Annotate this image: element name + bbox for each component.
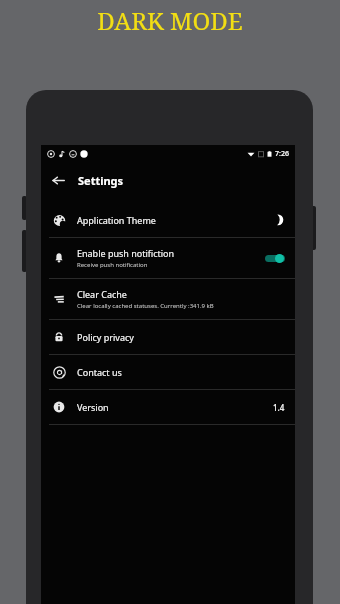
staticText: Clear locally cached statuses. Currently…: [77, 302, 214, 310]
staticText: 1.4: [273, 402, 285, 413]
button[interactable]: Contact us: [41, 355, 295, 389]
staticText: DARK MODE: [97, 4, 243, 37]
button[interactable]: Application Theme: [41, 203, 295, 237]
button[interactable]: Enable push notifiction: [41, 238, 295, 278]
staticText: Enable push notifiction: [77, 247, 175, 259]
button[interactable]: Version: [41, 390, 295, 424]
staticText: Application Theme: [77, 214, 156, 226]
button[interactable]: Enable push notification toggle: [265, 254, 285, 263]
button[interactable]: Clear Cache: [41, 279, 295, 319]
staticText: Version: [77, 401, 109, 413]
staticText: Clear Cache: [77, 288, 127, 300]
staticText: 7:26: [275, 149, 289, 159]
button[interactable]: Back: [41, 163, 75, 197]
staticText: Receive push notification: [77, 261, 148, 269]
staticText: Policy privacy: [77, 331, 134, 343]
button[interactable]: Policy privacy: [41, 320, 295, 354]
staticText: Contact us: [77, 366, 122, 378]
staticText: Settings: [78, 173, 124, 188]
